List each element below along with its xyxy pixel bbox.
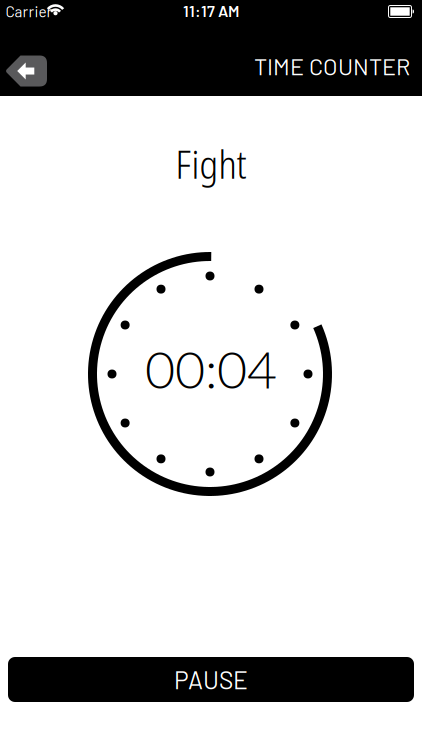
staticText: Fight — [175, 138, 246, 190]
staticText: 00:04 — [145, 337, 277, 400]
staticText: PAUSE — [174, 665, 248, 694]
button[interactable]: PAUSE — [8, 657, 414, 702]
button[interactable]: Back — [6, 55, 47, 86]
staticText: TIME COUNTER — [254, 52, 410, 80]
staticText: 11:17 AM — [183, 1, 239, 20]
staticText: Carrier — [5, 2, 52, 20]
